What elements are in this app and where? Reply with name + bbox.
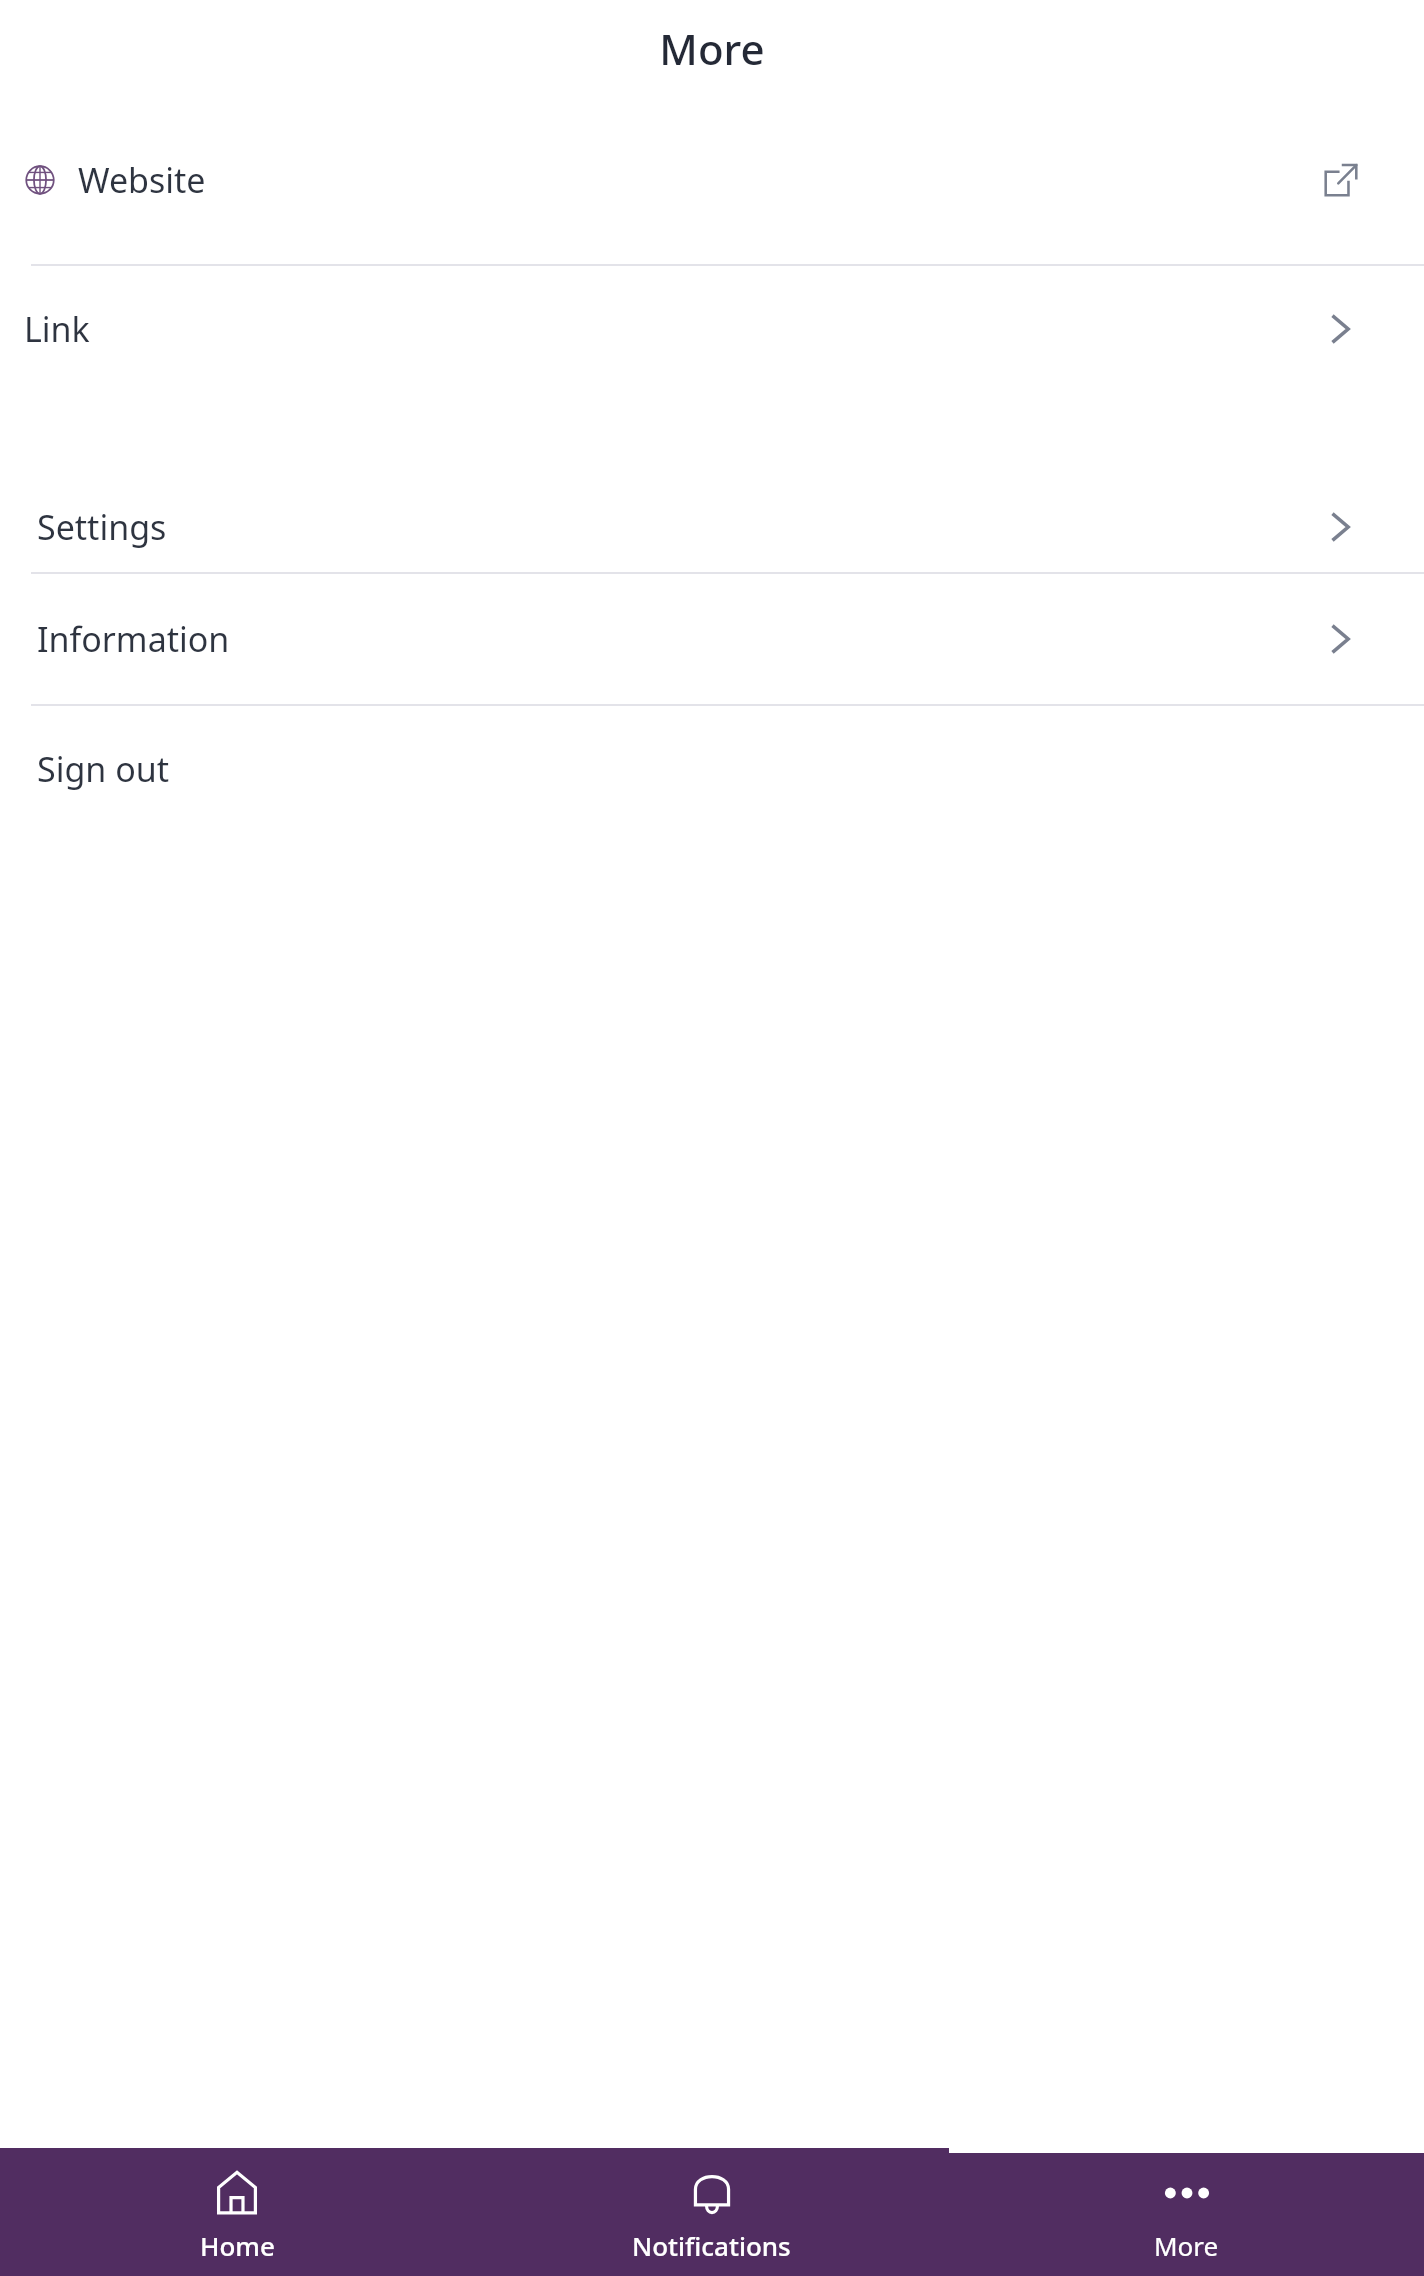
staticText: Sign out (37, 746, 170, 792)
other: Open website (1324, 163, 1358, 197)
staticText: Website (78, 157, 206, 203)
staticText: Home (200, 2228, 275, 2263)
staticText: Information (37, 616, 230, 662)
staticText: More (1154, 2228, 1219, 2263)
button[interactable]: Home (0, 2148, 474, 2276)
button[interactable]: Information (0, 574, 1424, 704)
staticText: Settings (37, 504, 167, 550)
button[interactable]: Link (0, 266, 1424, 392)
button[interactable]: Settings (0, 482, 1424, 572)
button[interactable]: Website (0, 96, 1424, 264)
button[interactable]: Notifications (474, 2148, 949, 2276)
button[interactable]: More (949, 2148, 1424, 2276)
staticText: Link (24, 306, 90, 352)
staticText: Notifications (632, 2228, 791, 2263)
staticText: More (659, 20, 765, 77)
button[interactable]: Sign out (0, 706, 1424, 832)
